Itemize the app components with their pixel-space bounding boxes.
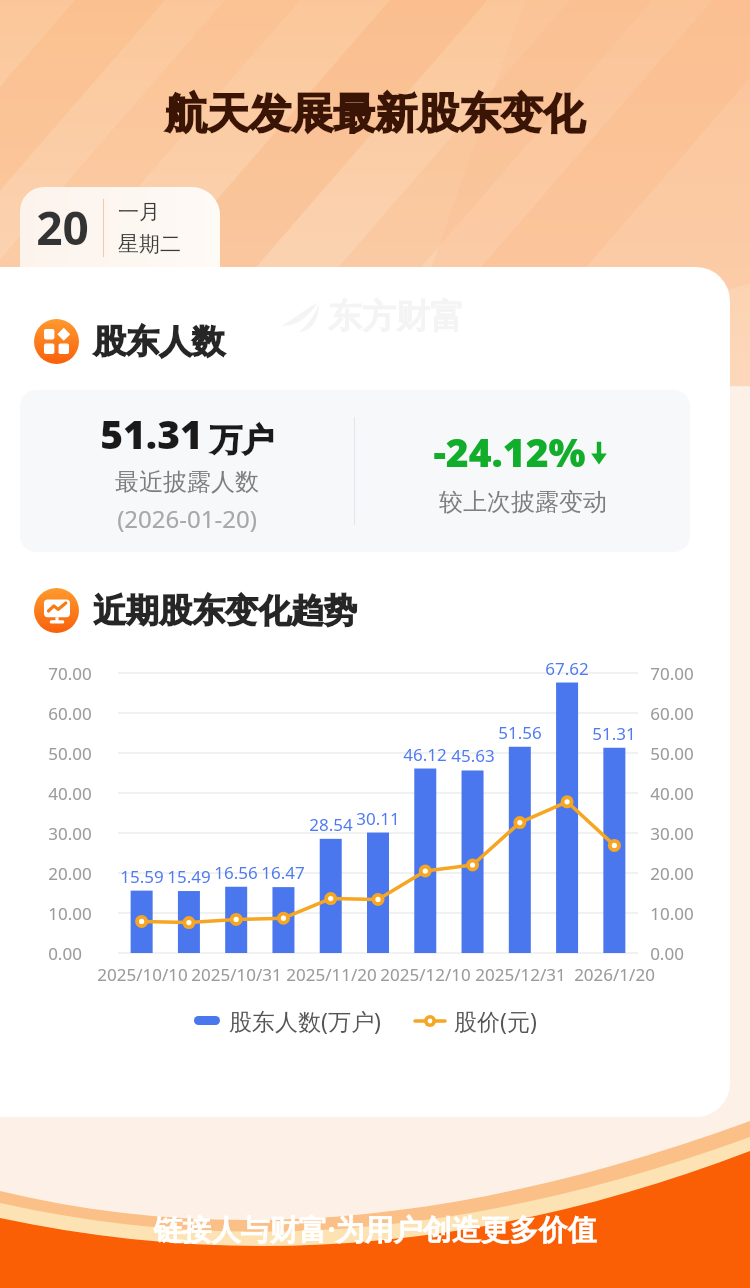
staticText: 万户 [210,420,274,460]
staticText: (2026-01-20) [117,502,257,535]
staticText: 16.56 [214,861,258,884]
staticText: 40.00 [48,782,92,805]
staticText: 50.00 [48,742,92,765]
staticText: 20.00 [650,862,694,885]
staticText: 航天发展最新股东变化 [165,88,585,141]
staticText: 星期二 [118,231,181,257]
staticText: 最近披露人数 [115,467,259,497]
button[interactable]: 股价(元) [415,1005,537,1036]
staticText: -24.12% [433,425,586,478]
staticText: 2025/10/10 [97,963,188,986]
button[interactable]: 股东人数 [34,319,225,364]
staticText: 51.56 [498,721,542,744]
staticText: 16.47 [261,861,305,884]
staticText: 46.12 [403,743,447,766]
staticText: 2025/12/10 [380,963,471,986]
staticText: 51.31 [592,722,636,745]
button[interactable]: 趋势 [34,588,357,633]
staticText: 10.00 [48,902,92,925]
staticText: 股东人数 [93,321,225,363]
other: 趋势 [34,588,79,633]
staticText: 70.00 [48,662,92,685]
staticText: 67.62 [545,657,589,680]
staticText: 30.11 [356,807,400,830]
other: 股东人数 [34,319,79,364]
staticText: 较上次披露变动 [439,487,607,517]
staticText: 链接人与财富·为用户创造更多价值 [153,1209,597,1249]
staticText: 20 [36,196,89,259]
staticText: 股价(元) [454,1005,537,1036]
staticText: 2025/12/31 [475,963,566,986]
staticText: 2026/1/20 [574,963,655,986]
staticText: 45.63 [451,744,495,767]
staticText: 60.00 [48,702,92,725]
staticText: 0.00 [650,942,684,965]
staticText: 近期股东变化趋势 [93,590,357,632]
staticText: 51.31 [100,407,203,460]
staticText: 2025/10/31 [191,963,282,986]
staticText: 2025/11/20 [286,963,377,986]
staticText: 60.00 [650,702,694,725]
staticText: 15.49 [167,865,211,888]
staticText: 50.00 [650,742,694,765]
staticText: 28.54 [309,813,353,836]
staticText: 10.00 [650,902,694,925]
button[interactable]: 股东人数(万户) [194,1005,381,1036]
staticText: 20.00 [48,862,92,885]
staticText: 股东人数(万户) [229,1005,381,1036]
staticText: 30.00 [650,822,694,845]
staticText: 70.00 [650,662,694,685]
staticText: 30.00 [48,822,92,845]
staticText: 0.00 [48,942,82,965]
staticText: 15.59 [120,865,164,888]
staticText: 东方财富 [328,295,464,338]
staticText: 40.00 [650,782,694,805]
staticText: 一月 [118,199,160,225]
